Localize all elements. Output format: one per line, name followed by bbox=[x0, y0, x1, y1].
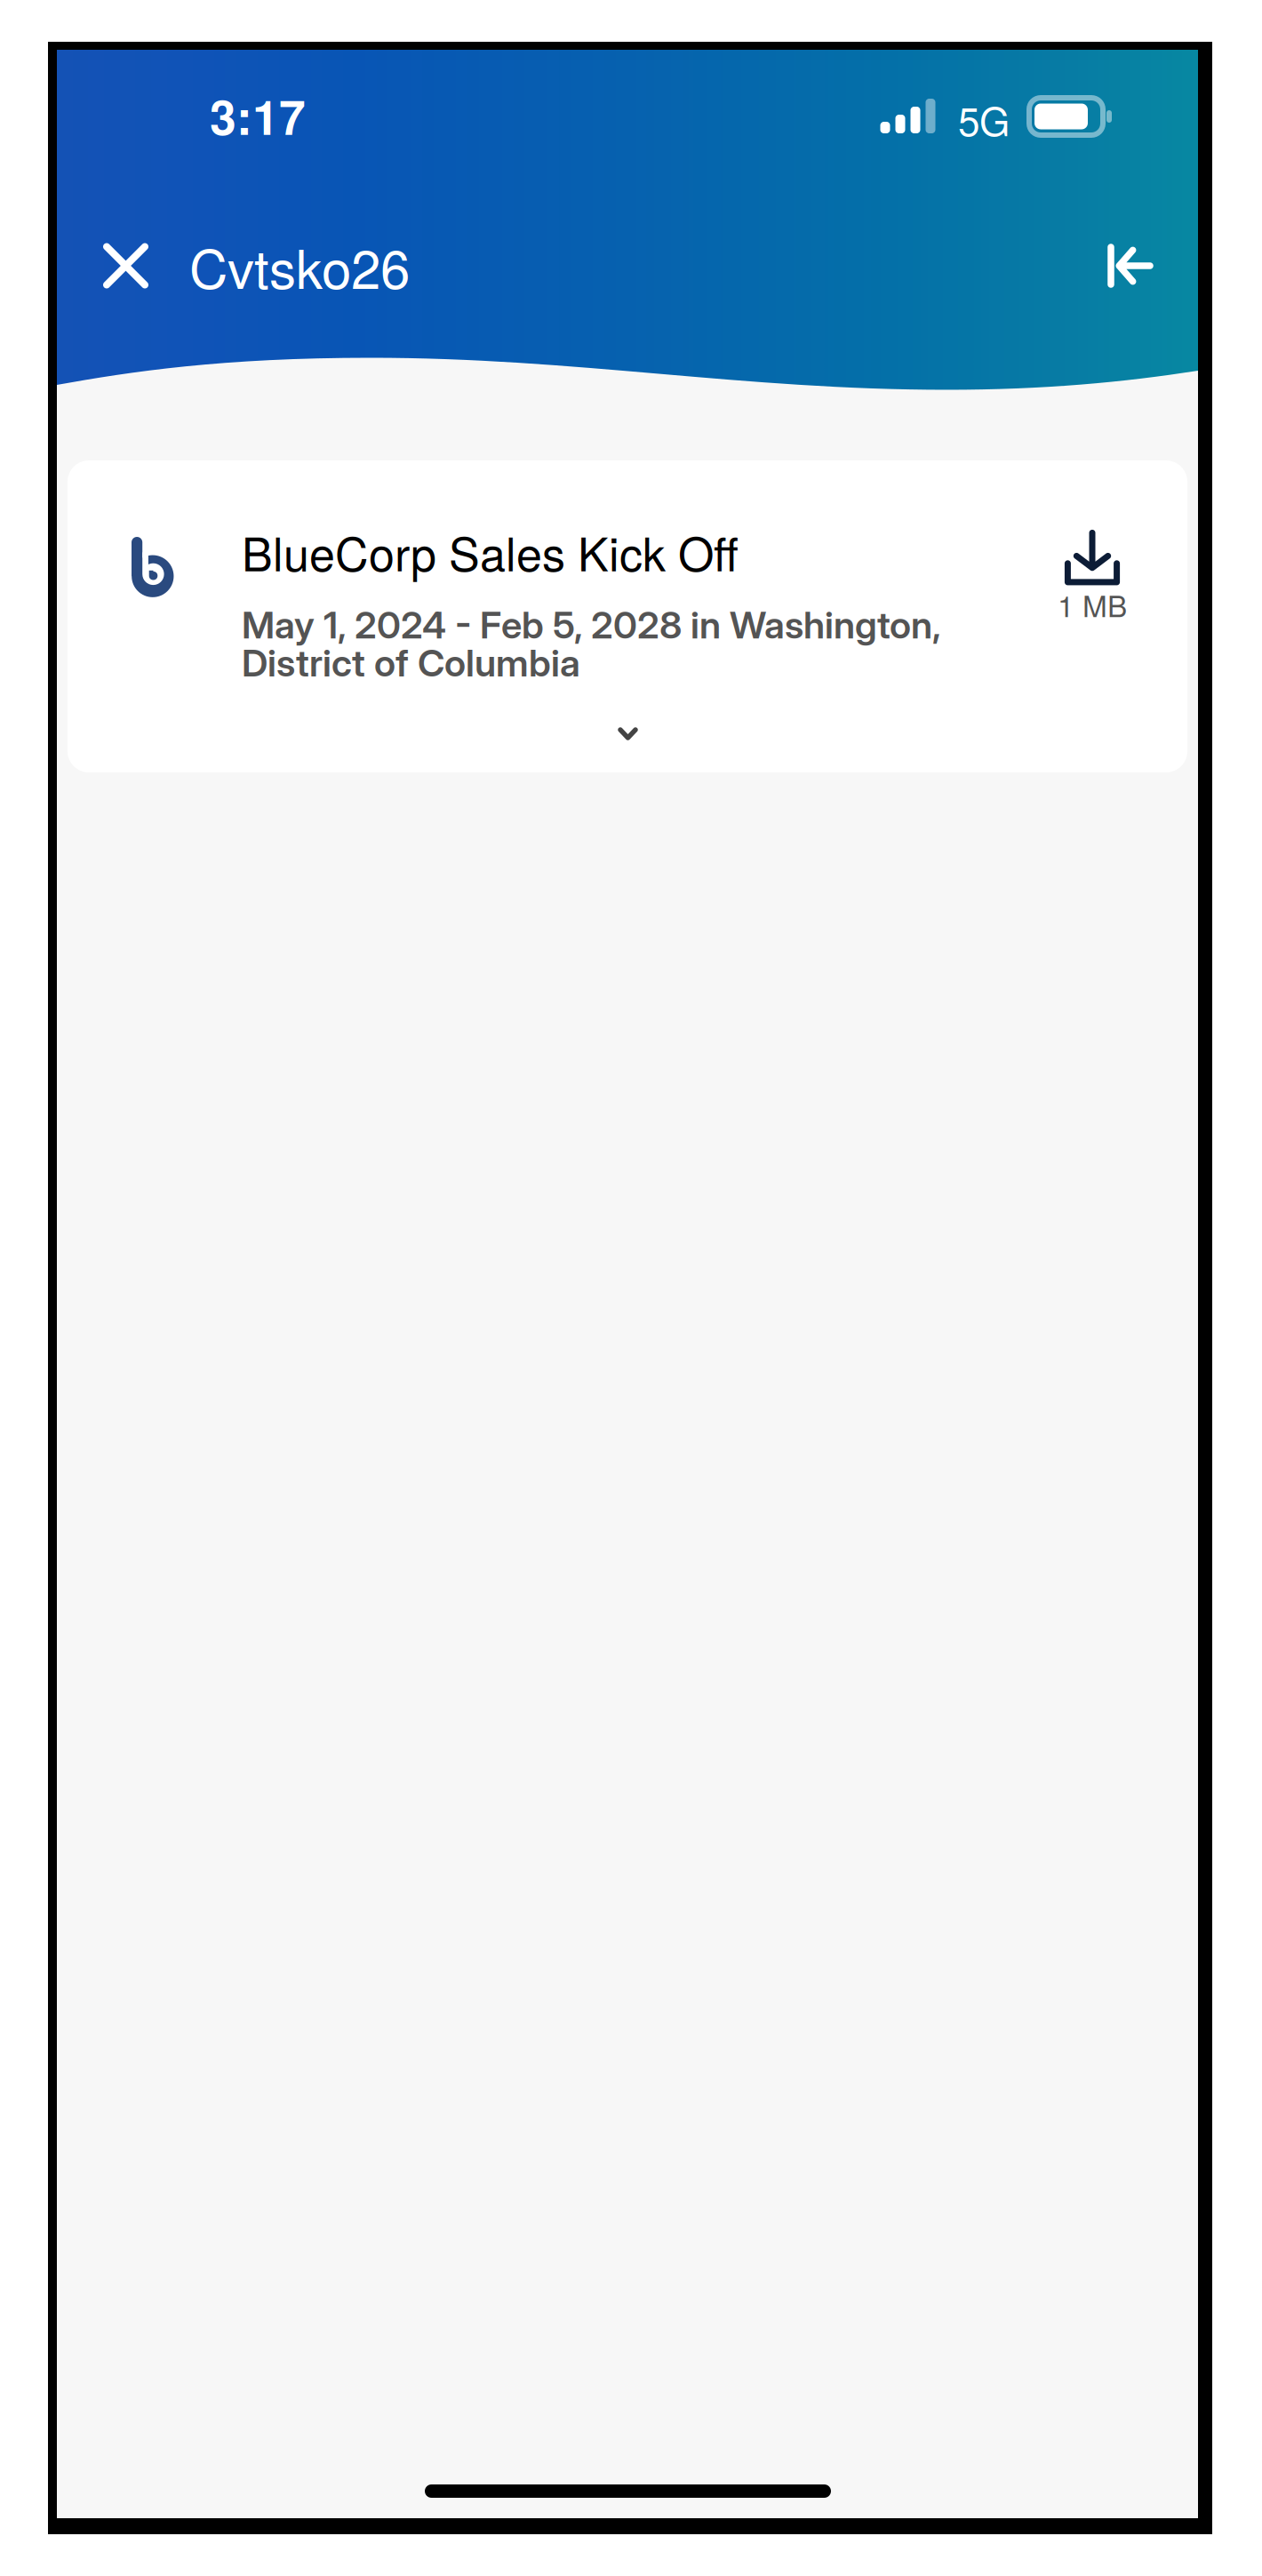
staticText: 3:17 bbox=[210, 82, 306, 150]
button[interactable]: Back to start bbox=[1079, 217, 1182, 315]
staticText: 1 MB bbox=[1058, 583, 1127, 626]
button[interactable]: BlueCorp Sales Kick Off bbox=[68, 460, 1187, 772]
button[interactable]: Close bbox=[75, 217, 177, 315]
button[interactable]: Cvtsko26 bbox=[189, 217, 563, 315]
staticText: BlueCorp Sales Kick Off bbox=[242, 518, 739, 584]
staticText: May 1, 2024 - Feb 5, 2028 in Washington,… bbox=[242, 602, 941, 685]
staticText: 5G bbox=[958, 91, 1010, 147]
staticText: Cvtsko26 bbox=[189, 228, 410, 304]
